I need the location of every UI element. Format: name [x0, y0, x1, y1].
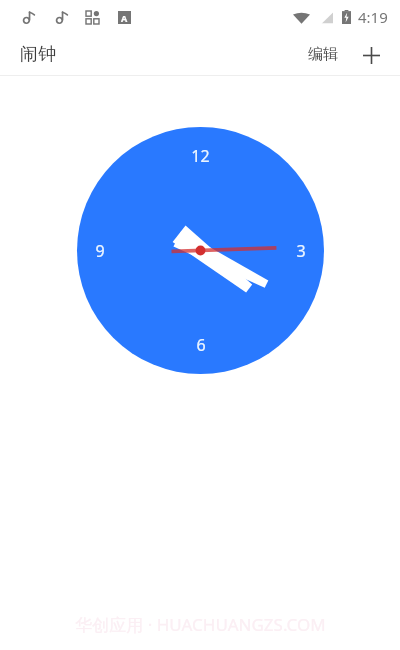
staticText: 华创应用 · HUACHUANGZS.COM [75, 613, 326, 636]
staticText: 6 [196, 334, 206, 356]
staticText: 9 [95, 240, 105, 262]
staticText: A [121, 12, 128, 24]
button[interactable]: Analog clock [77, 127, 324, 374]
button[interactable]: 编辑 [302, 41, 344, 68]
staticText: 编辑 [308, 45, 338, 64]
button[interactable]: Add alarm [356, 40, 386, 70]
staticText: 3 [296, 240, 306, 262]
staticText: 12 [191, 145, 210, 167]
staticText: 4:19 [358, 7, 388, 27]
staticText: 闹钟 [20, 43, 56, 66]
